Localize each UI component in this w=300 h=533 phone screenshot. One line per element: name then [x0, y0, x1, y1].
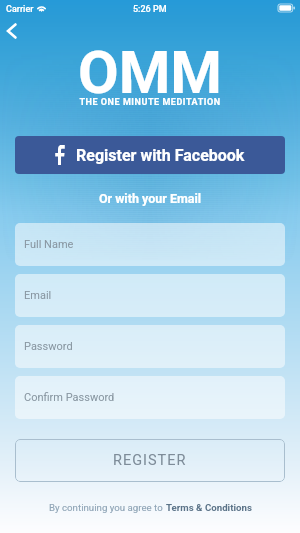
staticText: Email — [24, 289, 52, 302]
staticText: Password — [24, 340, 73, 353]
button[interactable]: Terms & Conditions — [166, 502, 252, 513]
staticText: OMM — [78, 38, 222, 107]
staticText: REGISTER — [113, 452, 187, 469]
button[interactable]: Email — [15, 274, 285, 317]
staticText: Full Name — [24, 238, 74, 251]
staticText: THE ONE MINUTE MEDITATION — [79, 97, 221, 108]
staticText: Confirm Password — [24, 391, 115, 404]
button[interactable]: Register with Facebook — [15, 136, 285, 174]
staticText: By continuing you agree to — [49, 502, 166, 513]
button[interactable]: Password — [15, 325, 285, 368]
button[interactable]: REGISTER — [15, 439, 285, 482]
staticText: Register with Facebook — [76, 146, 245, 165]
button[interactable]: Back — [0, 18, 28, 46]
button[interactable]: Full Name — [15, 223, 285, 266]
button[interactable]: Confirm Password — [15, 376, 285, 419]
staticText: Or with your Email — [15, 191, 285, 206]
staticText: Carrier — [6, 4, 34, 15]
staticText: 5:26 PM — [133, 4, 167, 15]
